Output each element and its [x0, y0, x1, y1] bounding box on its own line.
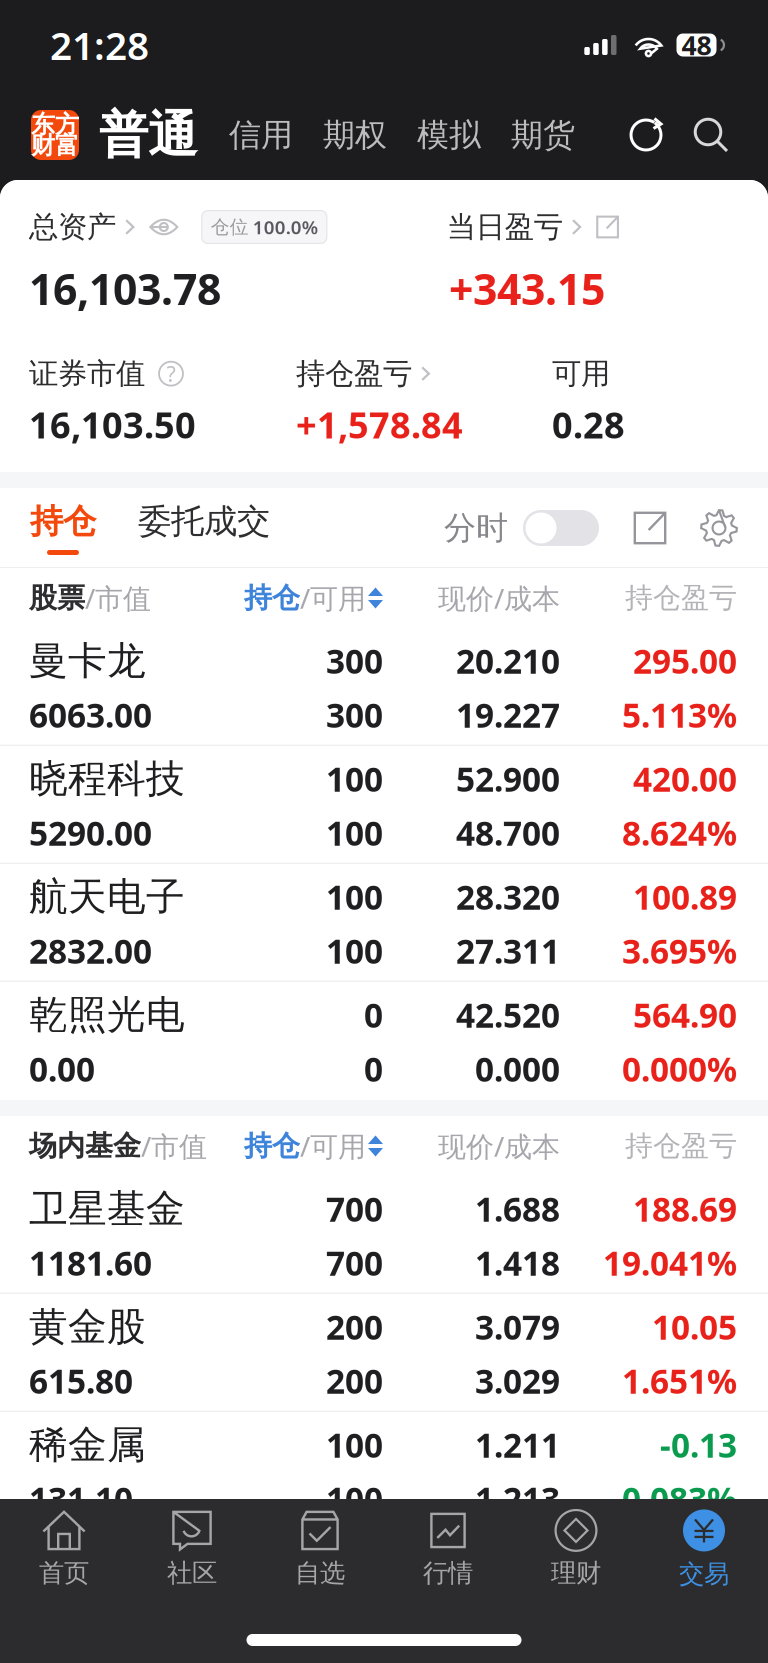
staticText: 0 — [364, 1047, 383, 1091]
staticText: 42.520 — [456, 993, 560, 1037]
button[interactable]: 总资产 — [29, 209, 134, 245]
staticText: 1.213 — [475, 1477, 560, 1521]
staticText: 0.000% — [622, 1047, 737, 1091]
button[interactable]: 委托成交 — [100, 501, 274, 555]
staticText: 持仓盈亏 — [296, 356, 412, 392]
staticText: 131.10 — [29, 1477, 133, 1521]
button[interactable]: 乾照光电 — [0, 982, 768, 1100]
button[interactable]: 行情 — [384, 1503, 512, 1598]
staticText: 3.029 — [475, 1359, 560, 1403]
staticText: 564.90 — [633, 993, 737, 1037]
staticText: 持仓 — [244, 581, 300, 615]
staticText: 19.227 — [456, 693, 560, 737]
button[interactable]: 自选 — [256, 1503, 384, 1598]
button[interactable]: 首页 — [0, 1503, 128, 1598]
staticText: 28.320 — [456, 875, 560, 919]
staticText: 持仓 — [244, 1129, 300, 1163]
staticText: /市值 — [141, 1127, 207, 1165]
button[interactable]: 曼卡龙 — [0, 628, 768, 746]
staticText: 股票 — [29, 581, 85, 615]
staticText: 615.80 — [29, 1359, 133, 1403]
staticText: 现价/成本 — [438, 1127, 560, 1165]
staticText: 普通 — [99, 105, 197, 165]
button[interactable]: 期权 — [295, 105, 389, 165]
button[interactable]: 模拟 — [389, 105, 483, 165]
staticText: 8.624% — [622, 811, 737, 855]
staticText: 100 — [326, 1423, 383, 1467]
staticText: 总资产 — [29, 209, 116, 245]
button[interactable]: 普通 — [79, 99, 201, 171]
staticText: 3.695% — [622, 929, 737, 973]
button[interactable]: 设置 — [669, 509, 738, 547]
staticText: 2832.00 — [29, 929, 152, 973]
button[interactable]: 详情 — [581, 215, 622, 239]
staticText: 模拟 — [417, 115, 481, 155]
staticText: 0.28 — [552, 401, 625, 448]
button[interactable]: 持仓 — [244, 1119, 383, 1173]
staticText: 300 — [326, 693, 383, 737]
button[interactable]: 期货 — [483, 105, 577, 165]
staticText: -0.13 — [660, 1423, 737, 1467]
button[interactable]: 隐藏金额 — [134, 216, 181, 237]
staticText: 10.05 — [652, 1305, 737, 1349]
staticText: 期权 — [323, 115, 387, 155]
button[interactable]: 晓程科技 — [0, 746, 768, 864]
staticText: 19.041% — [603, 1241, 737, 1285]
staticText: /可用 — [300, 579, 366, 617]
staticText: 5290.00 — [29, 811, 152, 855]
staticText: 700 — [326, 1187, 383, 1231]
staticText: 21:28 — [50, 19, 149, 71]
staticText: 3.079 — [475, 1305, 560, 1349]
button[interactable]: 社区 — [128, 1503, 256, 1598]
staticText: 20.210 — [456, 639, 560, 683]
staticText: 委托成交 — [138, 501, 270, 542]
button[interactable]: 理财 — [512, 1503, 640, 1598]
staticText: 48 — [681, 27, 711, 63]
staticText: 证券市值 — [29, 356, 145, 392]
staticText: 1.418 — [475, 1241, 560, 1285]
button[interactable]: 稀金属 — [0, 1412, 768, 1530]
staticText: 场内基金 — [29, 1129, 141, 1163]
staticText: 1.211 — [475, 1423, 560, 1467]
staticText: 可用 — [552, 356, 610, 392]
staticText: 晓程科技 — [29, 755, 185, 803]
staticText: 52.900 — [456, 757, 560, 801]
button[interactable]: 航天电子 — [0, 864, 768, 982]
staticText: 航天电子 — [29, 873, 185, 921]
button[interactable]: 持仓 — [244, 571, 383, 625]
button[interactable]: 信用 — [201, 105, 295, 165]
staticText: 0.00 — [29, 1047, 95, 1091]
staticText: 东 — [31, 110, 55, 139]
button[interactable]: 交易 — [640, 1502, 768, 1599]
staticText: 295.00 — [633, 639, 737, 683]
staticText: 27.311 — [456, 929, 560, 973]
staticText: 100.0% — [253, 215, 318, 239]
staticText: 16,103.78 — [29, 260, 221, 317]
button[interactable]: 持仓盈亏 — [296, 356, 429, 392]
staticText: 稀金属 — [29, 1421, 146, 1469]
button[interactable]: 刷新 — [619, 107, 674, 163]
staticText: +343.15 — [449, 260, 605, 317]
button[interactable]: 东方财富 — [31, 110, 79, 160]
staticText: 持仓盈亏 — [625, 581, 737, 615]
staticText: 420.00 — [633, 757, 737, 801]
staticText: 社区 — [167, 1557, 217, 1588]
staticText: 188.69 — [633, 1187, 737, 1231]
button[interactable]: 持仓 — [30, 501, 100, 555]
staticText: 1.651% — [622, 1359, 737, 1403]
button[interactable]: 卫星基金 — [0, 1176, 768, 1294]
staticText: 持仓 — [30, 501, 96, 542]
staticText: /可用 — [300, 1127, 366, 1165]
button[interactable]: 当日盈亏 — [447, 209, 581, 245]
button[interactable]: 搜索 — [674, 108, 731, 162]
staticText: 0.000 — [475, 1047, 560, 1091]
staticText: /市值 — [85, 579, 151, 617]
staticText: 100 — [326, 811, 383, 855]
staticText: 100 — [326, 929, 383, 973]
staticText: 700 — [326, 1241, 383, 1285]
staticText: 6063.00 — [29, 693, 152, 737]
button[interactable]: 黄金股 — [0, 1294, 768, 1412]
button[interactable]: 全屏 — [599, 511, 669, 545]
button[interactable]: 分时开关 — [508, 510, 599, 546]
staticText: 行情 — [423, 1557, 473, 1588]
